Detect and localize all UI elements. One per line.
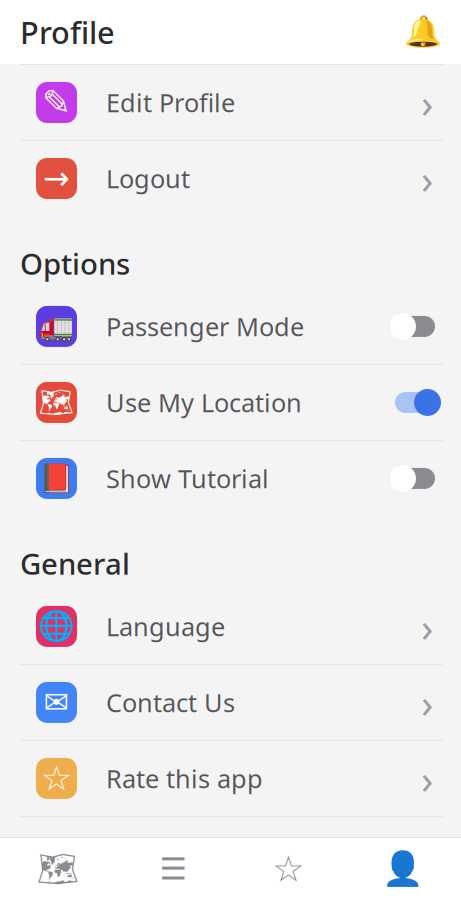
button[interactable]: →: [0, 141, 461, 216]
staticText: ›: [421, 676, 433, 729]
staticText: →: [43, 160, 70, 197]
button[interactable]: ✉: [0, 665, 461, 740]
staticText: Show Tutorial: [106, 462, 269, 495]
staticText: ☆: [41, 759, 72, 798]
staticText: ☰: [159, 852, 186, 886]
button[interactable]: 🗺: [0, 365, 461, 440]
staticText: Options: [20, 244, 130, 283]
button[interactable]: 🌐: [0, 589, 461, 664]
button[interactable]: ✎: [0, 65, 461, 140]
staticText: ›: [421, 76, 433, 129]
staticText: Logout: [106, 162, 190, 195]
staticText: ›: [421, 600, 433, 653]
staticText: 🚛: [39, 310, 74, 342]
staticText: 👤: [382, 850, 424, 888]
staticText: Profile: [20, 12, 115, 52]
staticText: ☆: [272, 849, 304, 889]
staticText: Passenger Mode: [106, 310, 304, 343]
staticText: ✉: [43, 685, 69, 720]
staticText: Use My Location: [106, 386, 302, 419]
staticText: 🗺: [37, 850, 79, 888]
button[interactable]: 📕: [0, 441, 461, 516]
staticText: ›: [421, 752, 433, 805]
button[interactable]: Map: [0, 838, 115, 900]
button[interactable]: Profile: [346, 838, 461, 900]
button[interactable]: Notifications: [401, 10, 445, 54]
staticText: Edit Profile: [106, 86, 235, 119]
staticText: ›: [421, 152, 433, 205]
staticText: ✎: [42, 83, 71, 122]
button[interactable]: ☆: [0, 741, 461, 816]
staticText: 🗺: [38, 386, 74, 418]
staticText: Language: [106, 610, 225, 643]
staticText: Contact Us: [106, 686, 235, 719]
button[interactable]: List: [115, 838, 230, 900]
staticText: Rate this app: [106, 762, 263, 795]
staticText: 🔔: [404, 14, 442, 49]
staticText: General: [20, 544, 130, 583]
button[interactable]: 🚛: [0, 289, 461, 364]
staticText: 🌐: [38, 610, 75, 643]
staticText: 📕: [39, 462, 74, 494]
button[interactable]: Favorites: [230, 838, 346, 900]
